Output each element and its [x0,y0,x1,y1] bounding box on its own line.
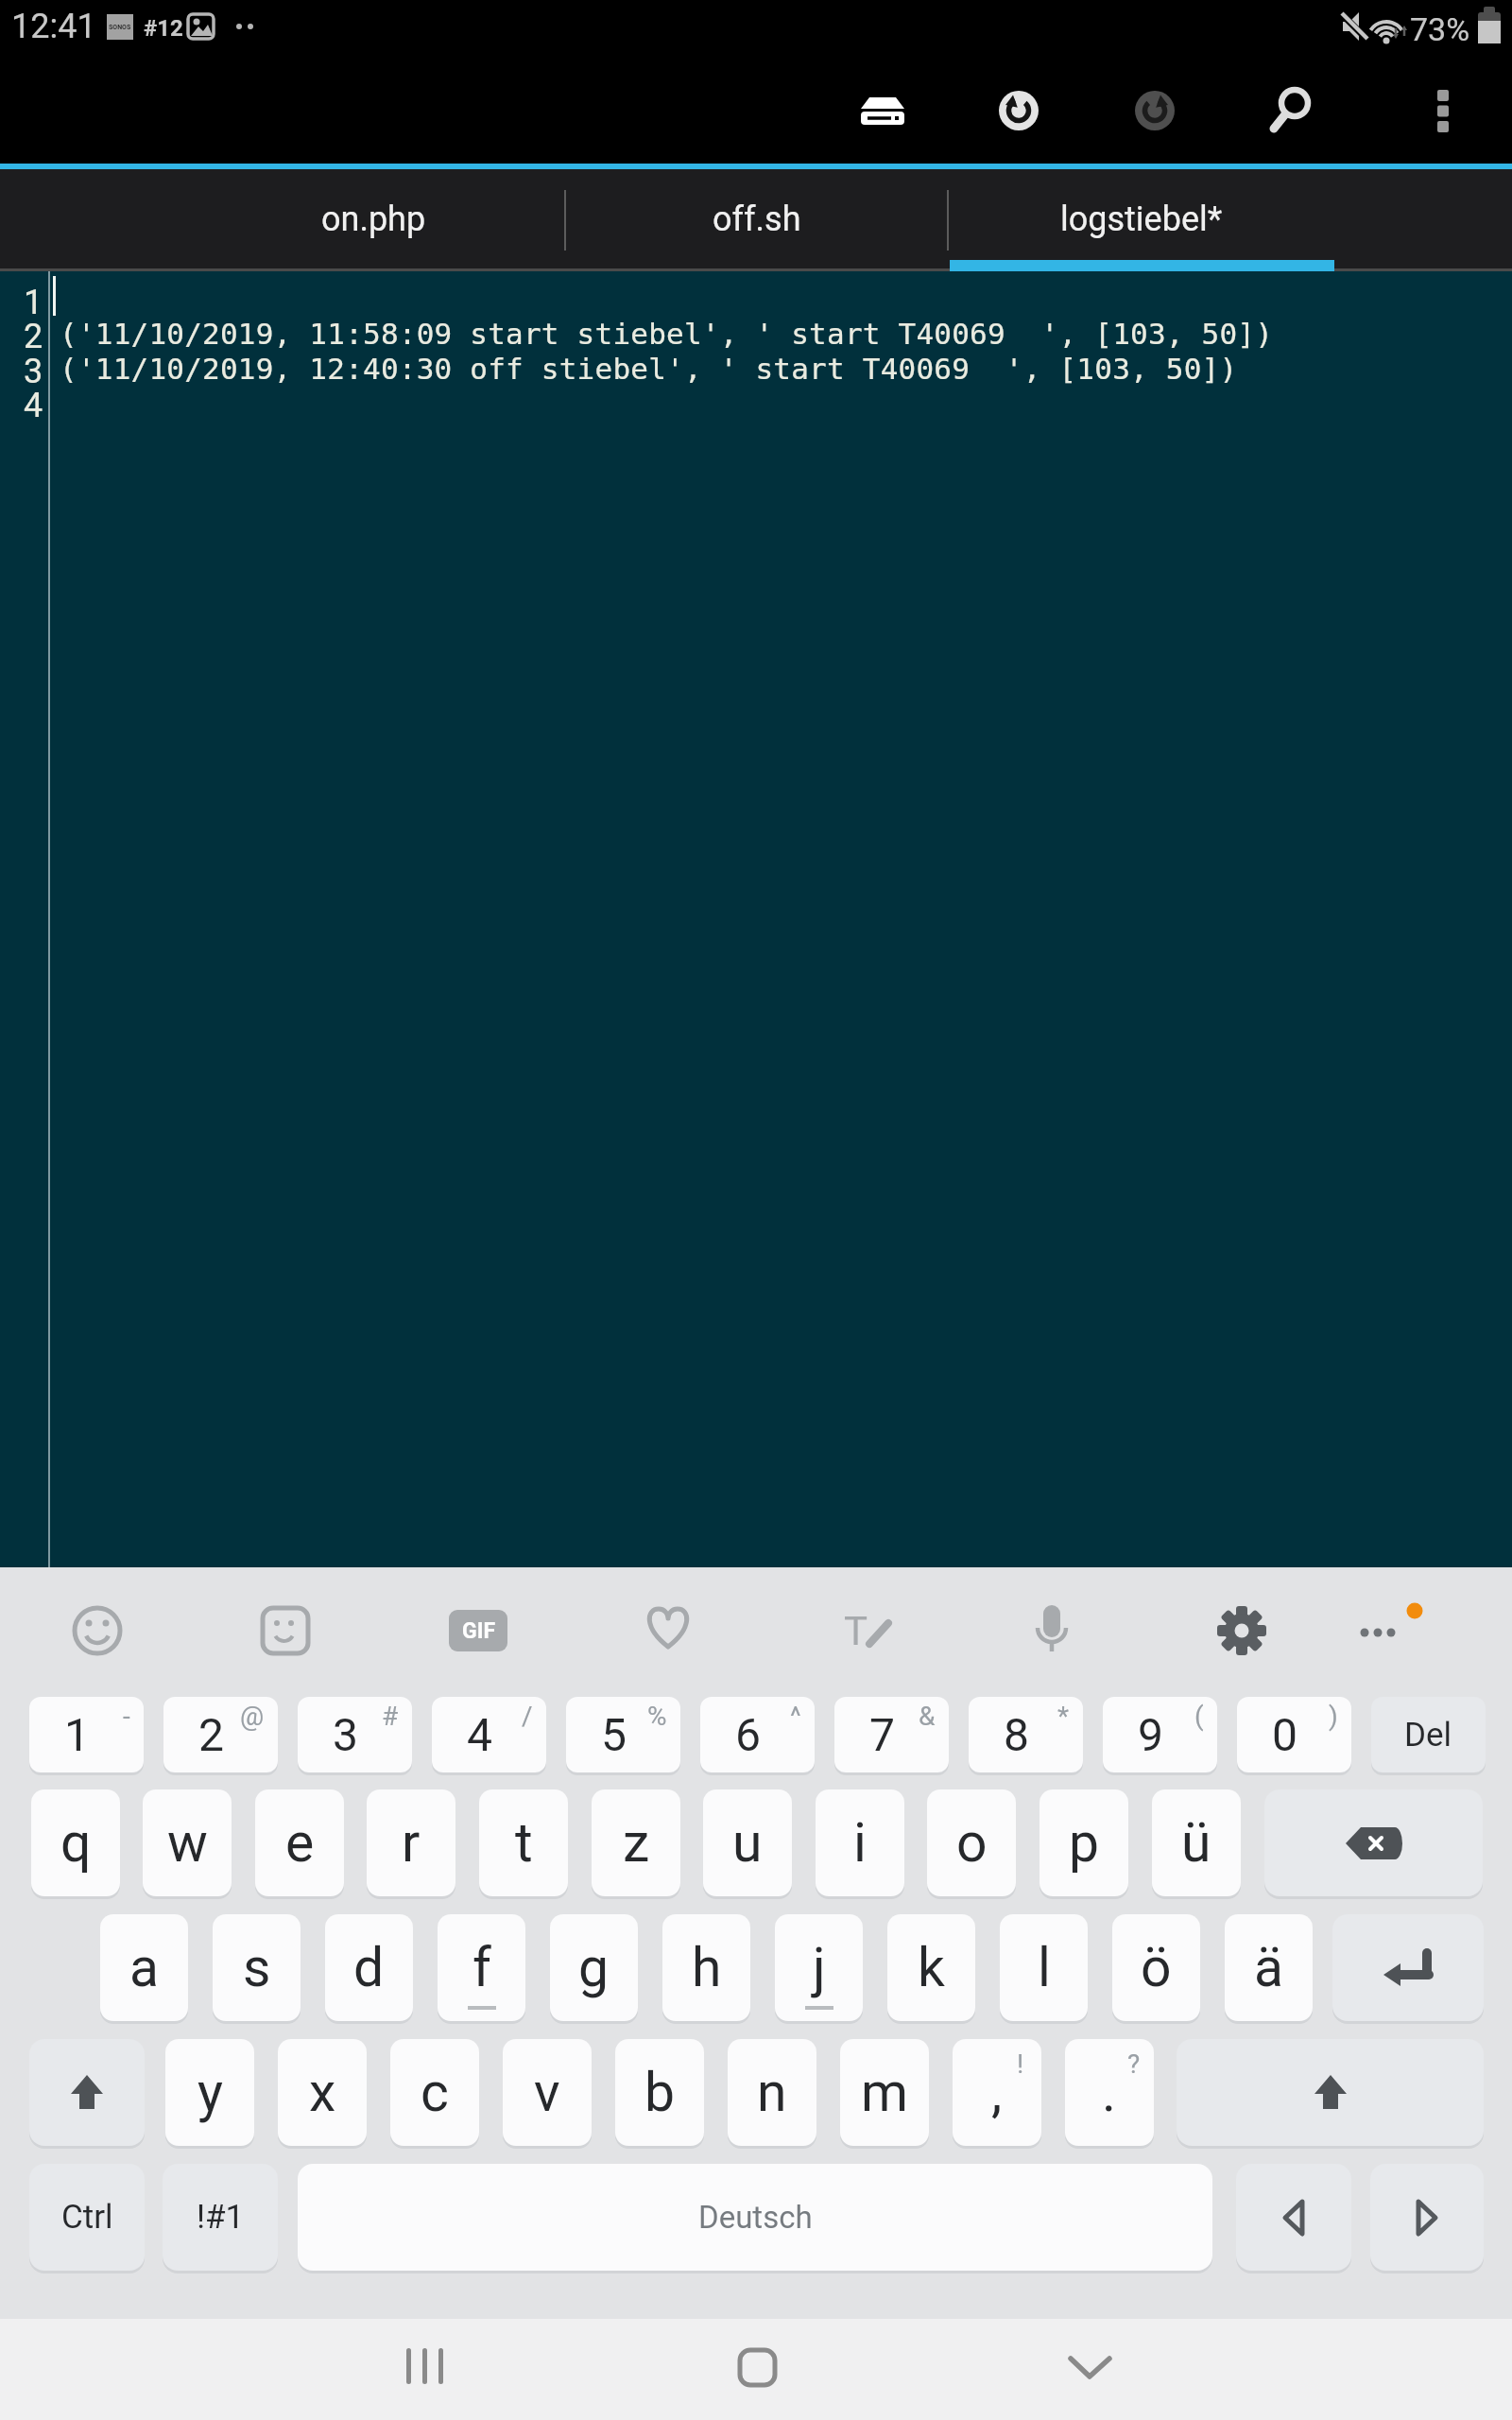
staticText: # [382,1701,399,1732]
staticText: s [243,1936,271,1999]
staticText: 0 [1272,1708,1297,1761]
button[interactable]: c [390,2039,479,2146]
button[interactable] [29,2039,145,2146]
staticText: e [285,1811,315,1875]
button[interactable]: logstiebel* [948,169,1334,268]
button[interactable]: T [835,1605,877,1656]
button[interactable] [1177,2039,1484,2146]
button[interactable]: p [1039,1789,1128,1896]
button[interactable]: !#1 [163,2164,278,2271]
staticText: 7 [869,1708,895,1761]
staticText: ) [1329,1701,1338,1732]
button[interactable]: . [1065,2039,1154,2146]
button[interactable]: z [592,1789,680,1896]
staticText: v [534,2061,560,2124]
button[interactable]: g [550,1914,638,2021]
staticText: u [732,1811,763,1875]
button[interactable] [635,1598,701,1664]
button[interactable]: h [662,1914,750,2021]
staticText: ( [1194,1701,1204,1732]
staticText: * [1057,1701,1070,1732]
staticText: m [861,2061,908,2124]
staticText: j [813,1936,826,1999]
button[interactable]: y [165,2039,254,2146]
staticText: i [853,1811,867,1875]
staticText: ('11/10/2019, 12:40:30 off stiebel', ' s… [60,352,1238,386]
button[interactable]: GIF [449,1610,507,1651]
button[interactable]: off.sh [565,169,948,268]
button[interactable] [64,1598,130,1664]
button[interactable]: d [325,1914,413,2021]
button[interactable]: x [278,2039,367,2146]
staticText: r [402,1811,421,1875]
staticText: p [1069,1811,1100,1875]
button[interactable] [1019,1598,1085,1664]
button[interactable]: , [953,2039,1041,2146]
staticText: . [1102,2061,1117,2124]
button[interactable]: 0 [1237,1697,1351,1772]
button[interactable]: Del [1371,1697,1486,1772]
button[interactable]: 9 [1103,1697,1217,1772]
button[interactable]: 3 [298,1697,412,1772]
button[interactable]: b [615,2039,704,2146]
button[interactable]: 6 [700,1697,815,1772]
button[interactable]: m [840,2039,929,2146]
button[interactable]: 4 [432,1697,546,1772]
button[interactable]: 2 [163,1697,278,1772]
button[interactable] [1246,59,1337,161]
button[interactable] [1209,1598,1275,1664]
button[interactable]: e [255,1789,344,1896]
button[interactable]: l [1000,1914,1088,2021]
button[interactable] [1264,1789,1483,1896]
button[interactable]: u [703,1789,792,1896]
button[interactable]: Ctrl [29,2164,145,2271]
staticText: h [692,1936,722,1999]
button[interactable]: q [31,1789,120,1896]
staticText: 1 [24,283,43,317]
button[interactable] [0,271,1512,1567]
button[interactable]: ä [1225,1914,1313,2021]
button[interactable]: w [143,1789,232,1896]
button[interactable]: j [775,1914,863,2021]
button[interactable] [362,2321,494,2419]
staticText: @ [240,1701,265,1732]
button[interactable] [837,59,928,161]
staticText: 12:41 [11,7,96,46]
button[interactable]: o [927,1789,1016,1896]
button[interactable]: ü [1152,1789,1241,1896]
button[interactable] [691,2321,823,2419]
staticText: % [647,1701,667,1732]
button[interactable] [1332,1914,1484,2021]
button[interactable] [1236,2164,1351,2271]
button[interactable]: 5 [566,1697,680,1772]
button[interactable]: s [213,1914,301,2021]
staticText: logstiebel* [1060,199,1223,239]
staticText: o [956,1811,988,1875]
button[interactable]: k [887,1914,975,2021]
button[interactable] [973,59,1064,161]
button[interactable]: r [367,1789,455,1896]
button[interactable] [1370,2164,1484,2271]
staticText: 1 [64,1708,90,1761]
button[interactable] [1398,59,1488,161]
button[interactable]: n [728,2039,816,2146]
button[interactable] [252,1598,318,1664]
button[interactable]: a [100,1914,188,2021]
button[interactable]: i [816,1789,904,1896]
button[interactable]: 1 [29,1697,144,1772]
staticText: 4 [24,386,43,420]
button[interactable] [1109,59,1200,161]
button[interactable]: Deutsch [298,2164,1212,2271]
button[interactable] [1023,2321,1156,2419]
button[interactable]: ö [1112,1914,1200,2021]
staticText: ! [1017,2048,1024,2080]
staticText: w [167,1811,208,1875]
button[interactable]: 8 [969,1697,1083,1772]
button[interactable]: f [438,1914,525,2021]
button[interactable]: t [479,1789,568,1896]
staticText: ? [1127,2048,1141,2080]
button[interactable]: on.php [181,169,565,268]
button[interactable]: v [503,2039,592,2146]
button[interactable]: 7 [834,1697,949,1772]
button[interactable] [1345,1598,1411,1664]
